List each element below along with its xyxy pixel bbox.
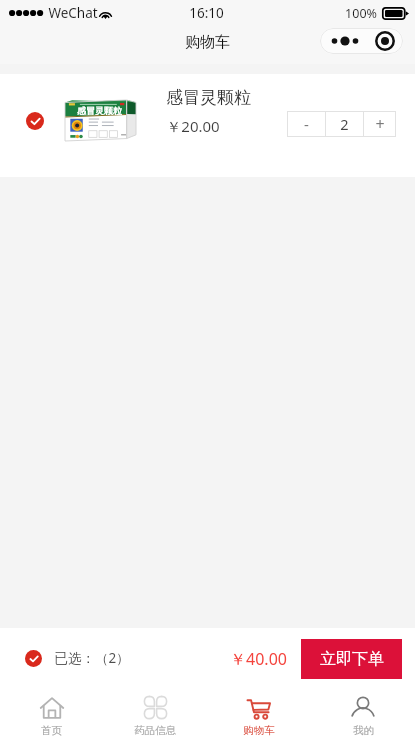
- staticText: 首页: [41, 724, 62, 737]
- staticText: 购物车: [243, 724, 275, 737]
- staticText: 100%: [345, 5, 377, 22]
- staticText: 立即下单: [320, 649, 384, 669]
- button[interactable]: Decrease quantity: [287, 111, 325, 137]
- staticText: -: [304, 114, 309, 134]
- button[interactable]: Item selected: [0, 74, 415, 177]
- button[interactable]: More options: [329, 29, 361, 53]
- staticText: 2: [340, 114, 349, 134]
- button[interactable]: Close: [371, 29, 399, 53]
- staticText: 已选：（2）: [54, 649, 130, 667]
- staticText: 购物车: [185, 33, 230, 52]
- staticText: ￥40.00: [230, 648, 287, 670]
- button[interactable]: 首页: [0, 690, 103, 737]
- button[interactable]: 已选：（2）: [25, 649, 130, 667]
- button[interactable]: 购物车: [207, 690, 311, 737]
- button[interactable]: Increase quantity: [364, 111, 396, 137]
- staticText: ￥20.00: [166, 116, 220, 136]
- button[interactable]: 药品信息: [103, 690, 207, 737]
- button[interactable]: Item selected: [26, 112, 44, 130]
- staticText: WeChat: [48, 4, 98, 22]
- staticText: 药品信息: [134, 724, 176, 737]
- staticText: 感冒灵颗粒: [166, 87, 251, 108]
- staticText: 16:10: [189, 4, 224, 22]
- button[interactable]: 我的: [311, 690, 415, 737]
- button[interactable]: 立即下单: [301, 639, 402, 679]
- staticText: 感冒灵颗粒: [77, 105, 122, 115]
- staticText: +: [375, 113, 385, 135]
- staticText: 我的: [353, 724, 374, 737]
